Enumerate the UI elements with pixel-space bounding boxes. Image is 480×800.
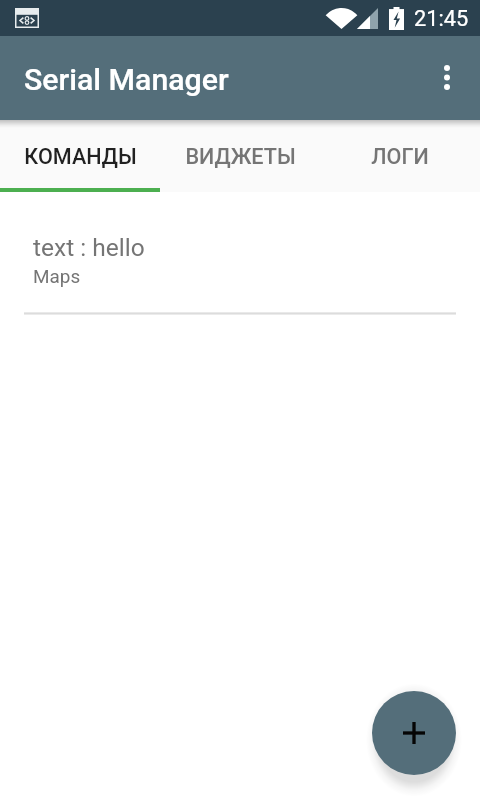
button[interactable]: Add xyxy=(372,691,456,775)
staticText: ВИДЖЕТЫ xyxy=(185,144,296,169)
staticText: 21:45 xyxy=(414,6,469,32)
button[interactable]: More options xyxy=(408,36,480,120)
staticText: ЛОГИ xyxy=(371,144,429,169)
button[interactable]: text : hello xyxy=(0,192,480,313)
button[interactable]: КОМАНДЫ xyxy=(0,120,160,192)
staticText: КОМАНДЫ xyxy=(24,144,137,169)
staticText: Serial Manager xyxy=(24,62,229,98)
button[interactable]: ЛОГИ xyxy=(320,120,480,192)
button[interactable]: ВИДЖЕТЫ xyxy=(160,120,320,192)
staticText: Maps xyxy=(33,265,81,287)
staticText: text : hello xyxy=(33,233,145,262)
